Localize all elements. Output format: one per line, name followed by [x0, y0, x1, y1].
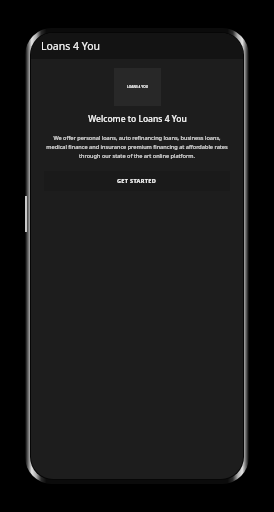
staticText: GET STARTED	[117, 177, 157, 185]
button[interactable]: Loans 4 You	[31, 33, 243, 59]
staticText: Loans 4 You	[41, 39, 100, 53]
staticText: We offer personal loans, auto refinancin…	[44, 134, 230, 160]
button[interactable]: GET STARTED	[44, 171, 230, 191]
staticText: Welcome to Loans 4 You	[88, 113, 187, 125]
staticText: LOANS 4 YOU	[127, 85, 149, 89]
